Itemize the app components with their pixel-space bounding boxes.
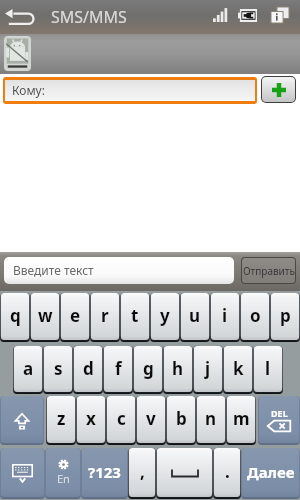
button[interactable]: , bbox=[129, 448, 155, 497]
staticText: k bbox=[233, 357, 244, 380]
staticText: y bbox=[160, 304, 170, 327]
button[interactable]: o bbox=[241, 293, 269, 340]
staticText: h bbox=[172, 357, 184, 380]
button[interactable]: ?123 bbox=[82, 448, 127, 497]
button[interactable]: k bbox=[224, 346, 252, 392]
staticText: q bbox=[10, 304, 21, 327]
button[interactable]: c bbox=[107, 396, 135, 443]
button[interactable]: Delete bbox=[259, 396, 299, 443]
staticText: w bbox=[38, 304, 53, 327]
staticText: b bbox=[176, 407, 187, 430]
staticText: o bbox=[250, 304, 261, 327]
button[interactable]: . bbox=[214, 448, 240, 497]
button[interactable]: i bbox=[211, 293, 239, 340]
button[interactable]: b bbox=[167, 396, 195, 443]
staticText: a bbox=[23, 357, 34, 380]
button[interactable]: Add recipient bbox=[262, 77, 295, 102]
staticText: Отправить bbox=[243, 264, 295, 278]
staticText: , bbox=[140, 460, 145, 483]
button[interactable]: Change language bbox=[46, 448, 80, 497]
button[interactable]: Введите текст bbox=[4, 257, 234, 284]
button[interactable]: Shift bbox=[1, 396, 43, 443]
button[interactable]: m bbox=[227, 396, 255, 443]
button[interactable]: Отправить bbox=[242, 258, 295, 283]
staticText: v bbox=[146, 407, 156, 430]
button[interactable]: r bbox=[91, 293, 119, 340]
button[interactable]: p bbox=[271, 293, 299, 340]
button[interactable]: l bbox=[254, 346, 282, 392]
button[interactable]: t bbox=[121, 293, 149, 340]
button[interactable]: v bbox=[137, 396, 165, 443]
button[interactable]: w bbox=[31, 293, 59, 340]
staticText: Введите текст bbox=[13, 262, 94, 278]
button[interactable]: e bbox=[61, 293, 89, 340]
button[interactable]: q bbox=[1, 293, 29, 340]
staticText: u bbox=[189, 304, 201, 327]
staticText: . bbox=[225, 460, 230, 483]
button[interactable]: Кому: bbox=[5, 80, 255, 101]
staticText: t bbox=[131, 304, 139, 327]
button[interactable]: Space bbox=[157, 448, 212, 497]
button[interactable]: j bbox=[194, 346, 222, 392]
button[interactable]: d bbox=[74, 346, 102, 392]
staticText: l bbox=[265, 357, 271, 380]
button[interactable]: Back bbox=[2, 0, 38, 34]
button[interactable]: Notification bbox=[4, 36, 31, 71]
staticText: m bbox=[233, 407, 250, 430]
button[interactable]: n bbox=[197, 396, 225, 443]
staticText: x bbox=[86, 407, 96, 430]
button[interactable]: a bbox=[14, 346, 42, 392]
button[interactable]: Hide keyboard bbox=[1, 448, 44, 497]
staticText: Кому: bbox=[12, 82, 45, 98]
staticText: SMS/MMS bbox=[51, 6, 127, 28]
button[interactable]: y bbox=[151, 293, 179, 340]
staticText: z bbox=[57, 407, 66, 430]
button[interactable]: Далее bbox=[242, 448, 299, 497]
staticText: ?123 bbox=[88, 462, 121, 482]
staticText: s bbox=[54, 357, 63, 380]
button[interactable]: h bbox=[164, 346, 192, 392]
button[interactable]: s bbox=[44, 346, 72, 392]
staticText: p bbox=[280, 304, 291, 327]
staticText: c bbox=[117, 407, 126, 430]
staticText: e bbox=[70, 304, 81, 327]
staticText: En bbox=[57, 471, 70, 486]
staticText: i bbox=[222, 304, 228, 327]
button[interactable]: g bbox=[134, 346, 162, 392]
staticText: d bbox=[83, 357, 94, 380]
staticText: DEL bbox=[271, 407, 288, 419]
button[interactable]: x bbox=[77, 396, 105, 443]
staticText: Далее bbox=[247, 462, 295, 482]
staticText: n bbox=[205, 407, 217, 430]
staticText: f bbox=[115, 357, 122, 380]
staticText: j bbox=[205, 357, 211, 380]
button[interactable]: z bbox=[47, 396, 75, 443]
staticText: r bbox=[101, 304, 109, 327]
staticText: g bbox=[143, 357, 154, 380]
button[interactable]: f bbox=[104, 346, 132, 392]
button[interactable]: u bbox=[181, 293, 209, 340]
